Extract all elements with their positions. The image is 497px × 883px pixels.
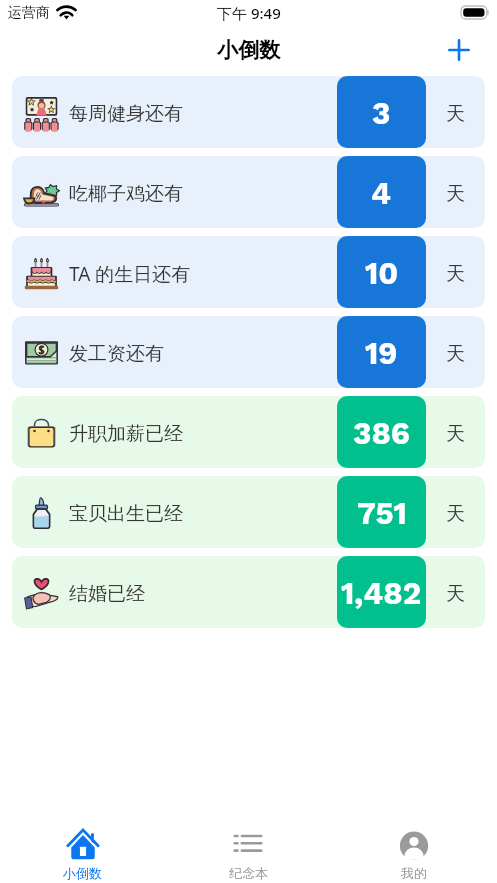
staticText: 结婚已经 bbox=[69, 582, 145, 606]
staticText: 10 bbox=[365, 255, 399, 291]
staticText: 我的 bbox=[401, 865, 427, 881]
other: Memos bbox=[231, 827, 265, 861]
button[interactable]: 吃椰子鸡还有 bbox=[12, 156, 485, 228]
staticText: 19 bbox=[365, 335, 398, 371]
staticText: 吃椰子鸡还有 bbox=[69, 182, 183, 206]
button[interactable]: 结婚已经 bbox=[12, 556, 485, 628]
staticText: 天 bbox=[446, 342, 465, 366]
staticText: 751 bbox=[357, 495, 407, 531]
staticText: 小倒数 bbox=[217, 37, 280, 63]
staticText: 运营商 bbox=[8, 4, 50, 22]
staticText: 3 bbox=[372, 95, 391, 131]
button[interactable]: 每周健身还有 bbox=[12, 76, 485, 148]
staticText: 下午 9:49 bbox=[217, 3, 281, 23]
staticText: 4 bbox=[371, 175, 392, 211]
button[interactable]: TA 的生日还有 bbox=[12, 236, 485, 308]
staticText: 1,482 bbox=[341, 575, 422, 611]
button[interactable]: Home bbox=[0, 810, 165, 883]
staticText: 天 bbox=[446, 262, 465, 286]
button[interactable]: Profile bbox=[331, 810, 497, 883]
staticText: 天 bbox=[446, 582, 465, 606]
other: Profile bbox=[397, 827, 431, 861]
button[interactable]: Add countdown bbox=[442, 33, 476, 67]
staticText: 天 bbox=[446, 422, 465, 446]
staticText: 宝贝出生已经 bbox=[69, 502, 183, 526]
staticText: 天 bbox=[446, 502, 465, 526]
button[interactable]: 宝贝出生已经 bbox=[12, 476, 485, 548]
staticText: 天 bbox=[446, 182, 465, 206]
staticText: 发工资还有 bbox=[69, 342, 164, 366]
staticText: 386 bbox=[353, 415, 410, 451]
button[interactable]: Memos bbox=[165, 810, 331, 883]
staticText: TA 的生日还有 bbox=[69, 261, 191, 287]
button[interactable]: 升职加薪已经 bbox=[12, 396, 485, 468]
other: Home bbox=[66, 827, 100, 861]
staticText: 每周健身还有 bbox=[69, 102, 183, 126]
staticText: 纪念本 bbox=[229, 865, 268, 881]
staticText: 小倒数 bbox=[63, 865, 102, 881]
staticText: 升职加薪已经 bbox=[69, 422, 183, 446]
button[interactable]: 发工资还有 bbox=[12, 316, 485, 388]
staticText: 天 bbox=[446, 102, 465, 126]
